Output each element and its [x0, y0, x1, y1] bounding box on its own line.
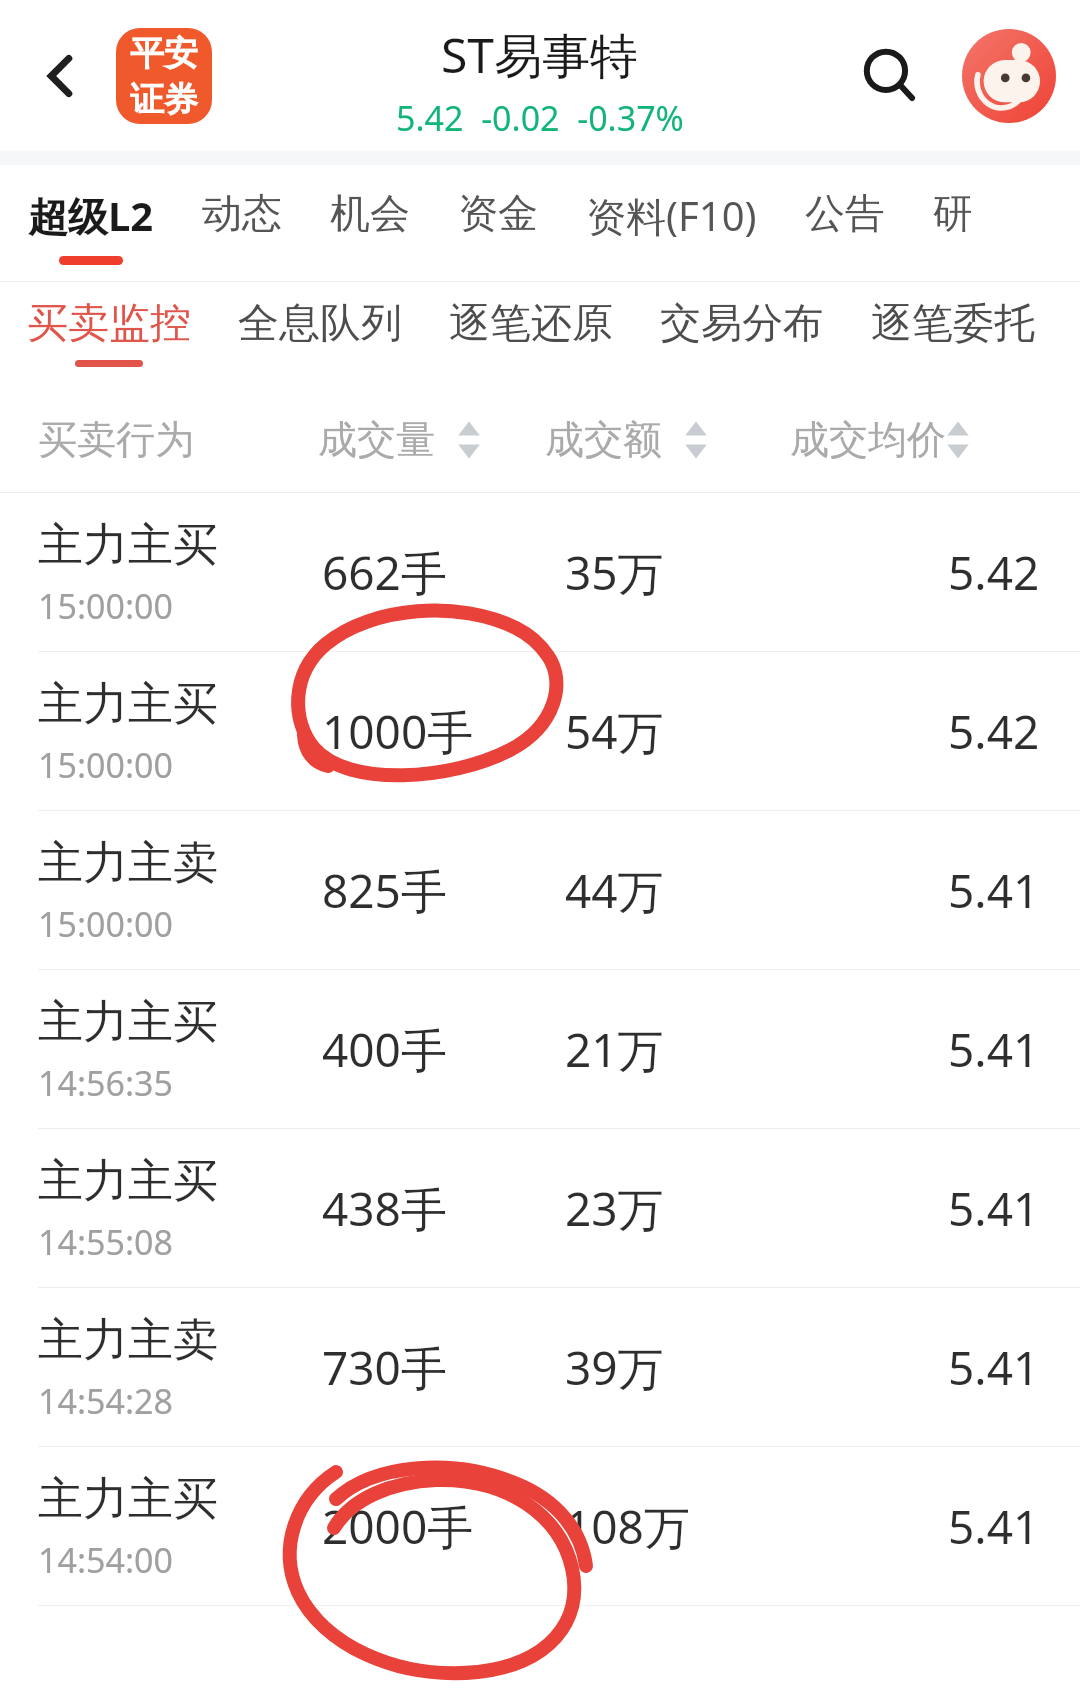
staticText: 14:55:08 — [38, 1219, 173, 1265]
staticText: 超级L2 — [28, 188, 154, 243]
staticText: 买卖监控 — [27, 298, 191, 350]
button[interactable]: Assistant — [962, 29, 1056, 123]
staticText: 主力主卖 — [38, 1312, 218, 1369]
button[interactable]: 主力主卖 — [0, 1288, 1080, 1447]
staticText: 662手 — [322, 541, 447, 604]
staticText: 平安 — [130, 32, 198, 75]
staticText: 逐笔还原 — [449, 298, 613, 350]
button[interactable]: 资金 — [458, 165, 538, 238]
staticText: 14:54:28 — [38, 1378, 173, 1424]
staticText: 全息队列 — [238, 298, 402, 350]
staticText: 成交量 — [318, 415, 435, 464]
staticText: 资金 — [458, 188, 538, 238]
staticText: ST易事特 — [441, 22, 639, 88]
staticText: 主力主买 — [38, 676, 218, 733]
staticText: 逐笔委托 — [871, 298, 1035, 350]
staticText: 公告 — [805, 188, 885, 238]
staticText: 2000手 — [322, 1495, 474, 1558]
button[interactable]: 研 — [933, 165, 973, 238]
staticText: 证券 — [130, 78, 198, 121]
button[interactable]: 买卖监控 — [27, 282, 191, 367]
button[interactable]: 主力主买 — [0, 493, 1080, 652]
staticText: 15:00:00 — [38, 742, 173, 788]
staticText: 机会 — [330, 188, 410, 238]
button[interactable]: 全息队列 — [238, 282, 402, 350]
button[interactable]: 主力主卖 — [0, 811, 1080, 970]
staticText: 5.41 — [948, 1336, 1040, 1399]
button[interactable]: Search — [848, 34, 932, 118]
staticText: 5.41 — [948, 1495, 1040, 1558]
staticText: 14:56:35 — [38, 1060, 173, 1106]
staticText: 5.42 — [948, 541, 1040, 604]
staticText: 交易分布 — [660, 298, 824, 350]
button[interactable]: 逐笔委托 — [871, 282, 1035, 350]
staticText: 21万 — [565, 1018, 664, 1081]
staticText: 400手 — [322, 1018, 447, 1081]
staticText: 5.41 — [948, 1177, 1040, 1240]
staticText: 15:00:00 — [38, 583, 173, 629]
staticText: 44万 — [565, 859, 664, 922]
staticText: 825手 — [322, 859, 447, 922]
button[interactable]: 主力主买 — [0, 1447, 1080, 1606]
button[interactable]: 资料(F10) — [586, 165, 757, 243]
button[interactable]: Back — [22, 38, 98, 114]
staticText: 14:54:00 — [38, 1537, 173, 1583]
staticText: 23万 — [565, 1177, 664, 1240]
button[interactable]: 主力主买 — [0, 970, 1080, 1129]
staticText: 5.42 — [948, 700, 1040, 763]
staticText: 主力主买 — [38, 1471, 218, 1528]
staticText: 5.42 -0.02 -0.37% — [396, 95, 684, 141]
button[interactable]: Ping An Securities — [116, 28, 212, 124]
staticText: 39万 — [565, 1336, 664, 1399]
staticText: 主力主买 — [38, 1153, 218, 1210]
staticText: 54万 — [565, 700, 664, 763]
staticText: 主力主买 — [38, 994, 218, 1051]
button[interactable]: 超级L2 — [28, 165, 154, 265]
staticText: 108万 — [565, 1495, 690, 1558]
staticText: 买卖行为 — [38, 415, 194, 464]
staticText: 主力主买 — [38, 517, 218, 574]
staticText: 研 — [933, 188, 973, 238]
staticText: 动态 — [202, 188, 282, 238]
staticText: 35万 — [565, 541, 664, 604]
button[interactable]: 主力主买 — [0, 1129, 1080, 1288]
staticText: 438手 — [322, 1177, 447, 1240]
button[interactable]: 逐笔还原 — [449, 282, 613, 350]
button[interactable]: 公告 — [805, 165, 885, 238]
staticText: 1000手 — [322, 700, 474, 763]
button[interactable]: 机会 — [330, 165, 410, 238]
staticText: 主力主卖 — [38, 835, 218, 892]
button[interactable]: 动态 — [202, 165, 282, 238]
staticText: 5.41 — [948, 859, 1040, 922]
button[interactable]: 交易分布 — [660, 282, 824, 350]
staticText: 15:00:00 — [38, 901, 173, 947]
staticText: 资料(F10) — [586, 188, 757, 243]
staticText: 5.41 — [948, 1018, 1040, 1081]
staticText: 成交额 — [545, 415, 662, 464]
staticText: 730手 — [322, 1336, 447, 1399]
staticText: 成交均价 — [790, 415, 946, 464]
button[interactable]: 主力主买 — [0, 652, 1080, 811]
